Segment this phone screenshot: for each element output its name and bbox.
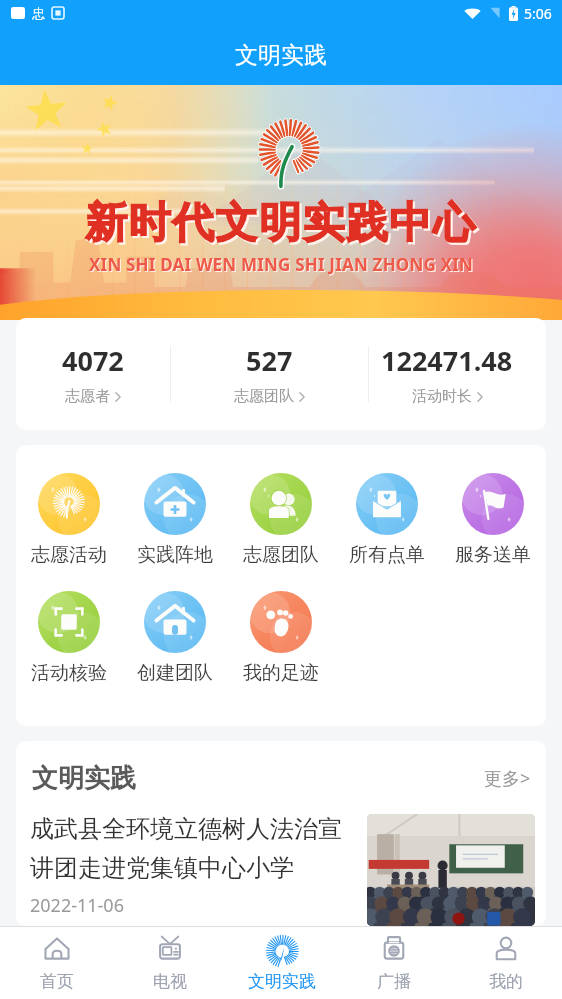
staticText: 电视 bbox=[153, 971, 187, 992]
staticText: 广播 bbox=[377, 971, 411, 992]
button[interactable]: 我的足迹 bbox=[228, 591, 334, 685]
button[interactable]: 志愿团队 bbox=[228, 473, 334, 567]
button[interactable]: 4072 bbox=[16, 318, 170, 430]
staticText: 4072 bbox=[62, 342, 124, 379]
staticText: 527 bbox=[246, 342, 293, 379]
staticText: XIN SHI DAI WEN MING SHI JIAN ZHONG XIN bbox=[89, 253, 474, 276]
staticText: 我的 bbox=[489, 971, 523, 992]
staticText: 创建团队 bbox=[137, 661, 213, 685]
staticText: 志愿活动 bbox=[31, 543, 107, 567]
button[interactable]: 创建团队 bbox=[122, 591, 228, 685]
button[interactable]: 活动核验 bbox=[16, 591, 122, 685]
staticText: 新时代文明实践中心 bbox=[85, 197, 477, 250]
button[interactable]: 服务送单 bbox=[440, 473, 546, 567]
button[interactable]: 首页 bbox=[0, 927, 113, 999]
staticText: 更多> bbox=[484, 766, 531, 791]
staticText: 我的足迹 bbox=[243, 661, 319, 685]
staticText: 首页 bbox=[40, 971, 74, 992]
button[interactable]: 广播 bbox=[338, 927, 450, 999]
staticText: 志愿者 bbox=[65, 387, 110, 406]
staticText: 志愿团队 bbox=[234, 387, 294, 406]
button[interactable]: 122471.48 bbox=[369, 318, 525, 430]
staticText: 文明实践 bbox=[32, 762, 136, 795]
staticText: 忠 bbox=[32, 5, 45, 21]
staticText: 志愿团队 bbox=[243, 543, 319, 567]
staticText: 成武县全环境立德树人法治宣讲团走进党集镇中心小学 bbox=[30, 814, 363, 883]
staticText: 文明实践 bbox=[235, 41, 327, 70]
button[interactable]: 志愿活动 bbox=[16, 473, 122, 567]
staticText: 新时代文明实践中心 bbox=[87, 199, 479, 252]
button[interactable]: 实践阵地 bbox=[122, 473, 228, 567]
staticText: 实践阵地 bbox=[137, 543, 213, 567]
staticText: 服务送单 bbox=[455, 543, 531, 567]
staticText: 122471.48 bbox=[381, 342, 513, 379]
button[interactable]: 我的 bbox=[450, 927, 562, 999]
button[interactable]: 电视 bbox=[113, 927, 226, 999]
button[interactable]: 所有点单 bbox=[334, 473, 440, 567]
button[interactable]: 文明实践 bbox=[226, 927, 338, 999]
button[interactable]: 成武县全环境立德树人法治宣讲团走进党集镇中心小学 bbox=[16, 814, 546, 926]
staticText: 文明实践 bbox=[248, 971, 316, 992]
staticText: 5:06 bbox=[524, 4, 552, 23]
staticText: 活动时长 bbox=[412, 387, 472, 406]
button[interactable]: 更多> bbox=[484, 766, 531, 791]
staticText: 所有点单 bbox=[349, 543, 425, 567]
staticText: 2022-11-06 bbox=[30, 893, 124, 918]
staticText: XIN SHI DAI WEN MING SHI JIAN ZHONG XIN bbox=[90, 254, 475, 277]
button[interactable]: 527 bbox=[171, 318, 368, 430]
staticText: 活动核验 bbox=[31, 661, 107, 685]
